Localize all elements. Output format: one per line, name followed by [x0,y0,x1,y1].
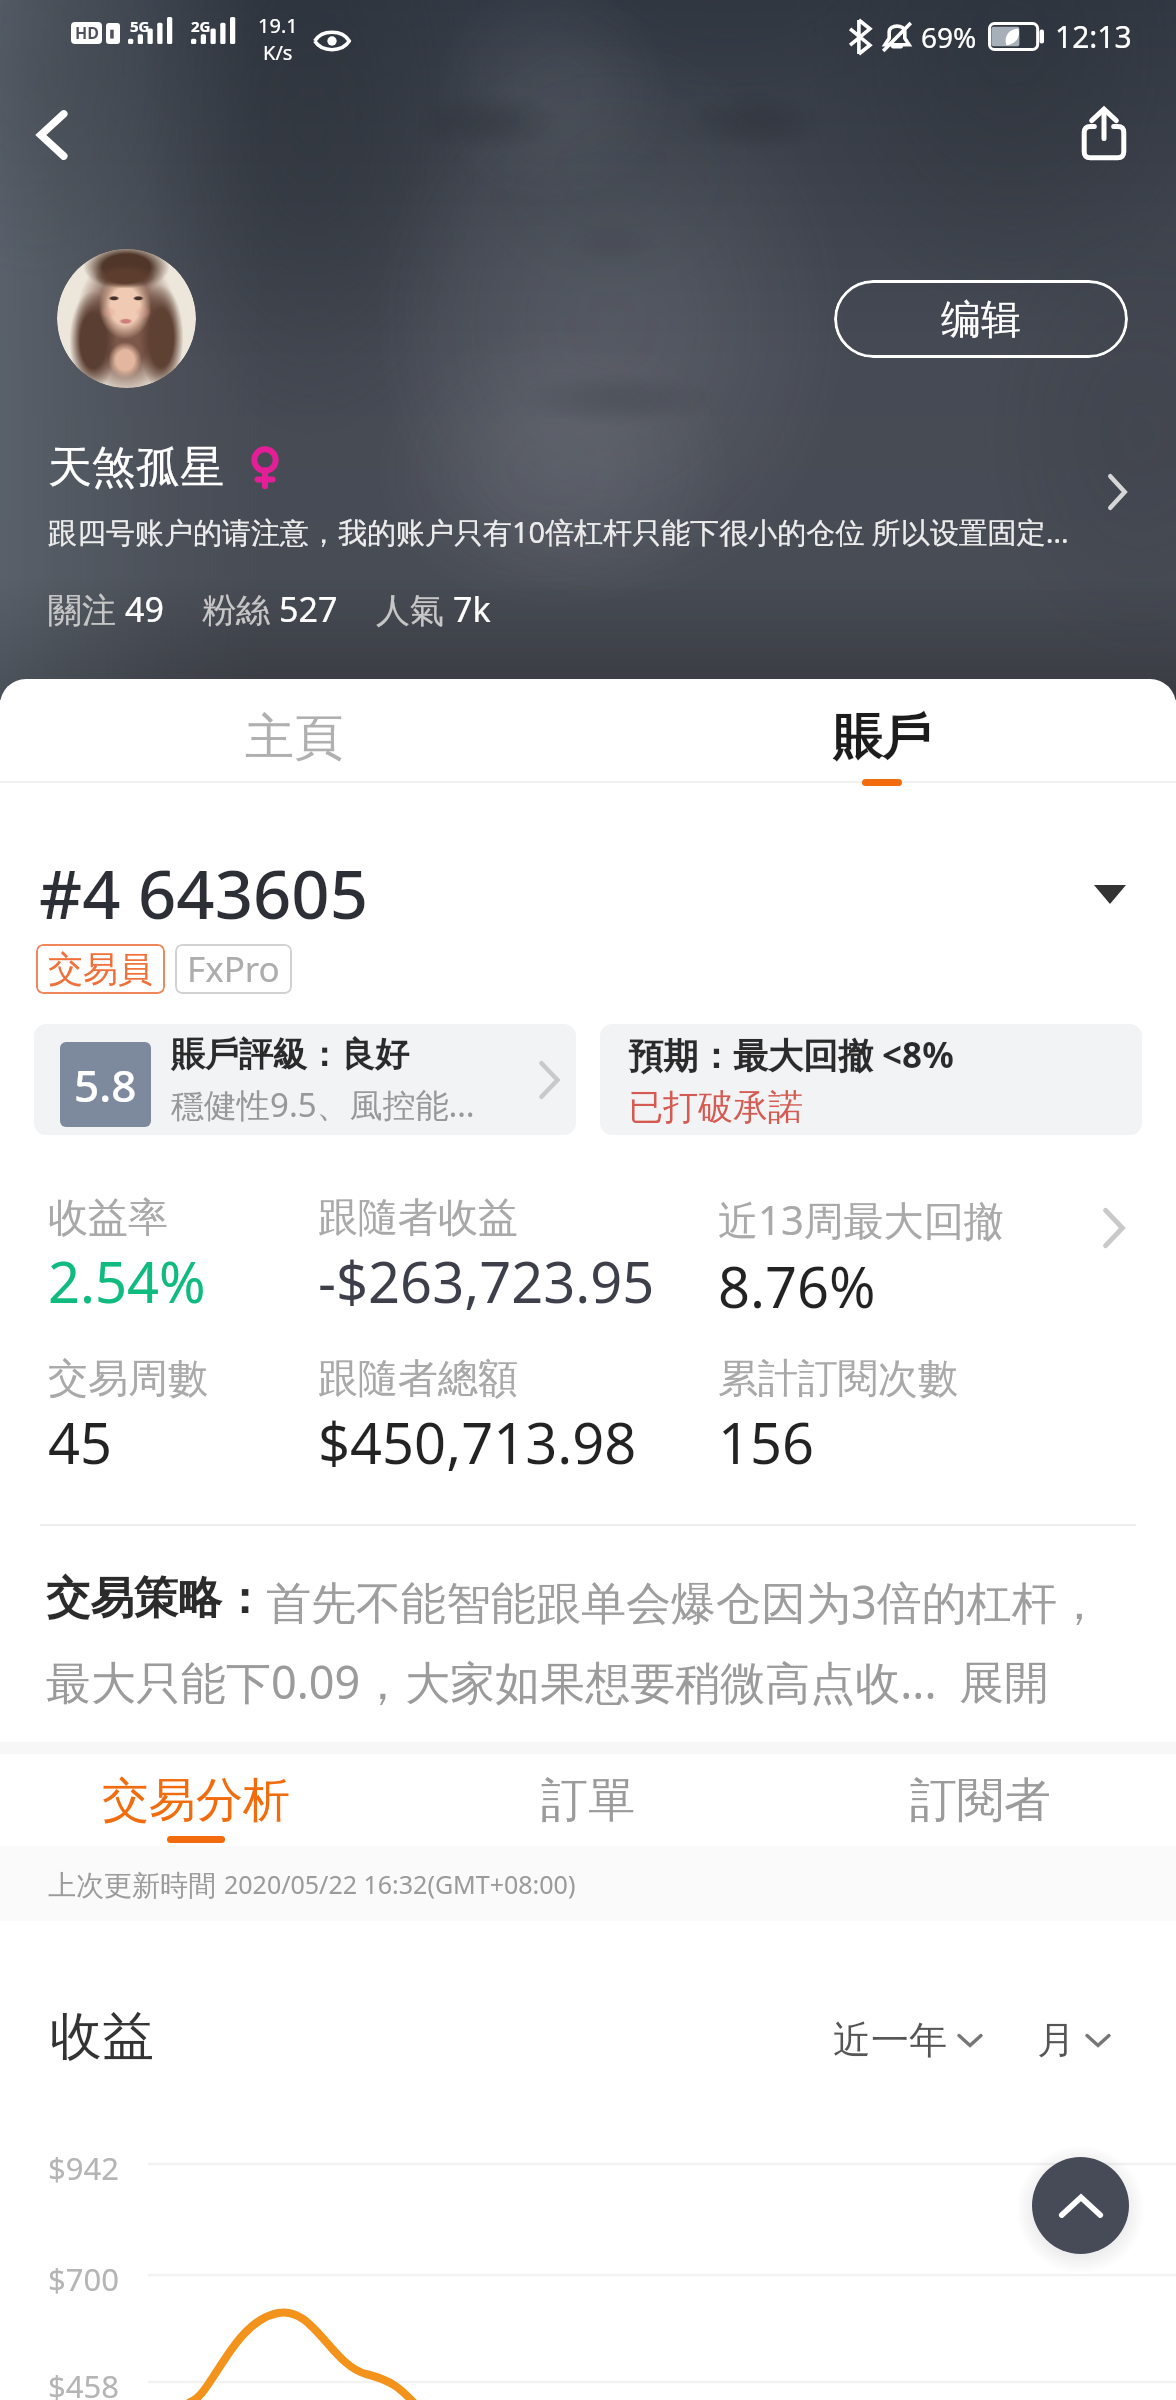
staticText: 天煞孤星 [48,440,224,495]
staticText: 交易員 [48,947,153,991]
staticText: FxPro [187,945,280,993]
button[interactable]: Profile details [1085,460,1149,524]
staticText: 5G [130,16,150,36]
staticText: 收益 [50,2004,154,2070]
staticText: 45 [48,1404,113,1480]
staticText: 交易策略： [46,1571,266,1626]
staticText: 2G [191,16,211,36]
staticText: 最大只能下0.09，大家如果想要稍微高点收... [46,1651,937,1712]
button[interactable]: 訂閱者 [784,1754,1176,1846]
staticText: 527 [279,586,338,632]
staticText: 近一年 [833,2016,947,2064]
staticText: 收益率 [48,1192,168,1242]
button[interactable]: Select account [1080,864,1140,924]
staticText: 訂單 [541,1771,635,1830]
staticText: 主頁 [245,707,343,769]
staticText: 19.1 [258,12,298,39]
staticText: K/s [263,39,293,66]
button[interactable]: 月 [1037,2016,1109,2064]
button[interactable]: 交易分析 [0,1754,392,1846]
staticText: 賬戶 [833,707,931,769]
staticText: $942 [48,2147,119,2189]
staticText: 交易分析 [102,1771,290,1830]
staticText: 跟隨者收益 [318,1192,518,1242]
button[interactable]: Share [1067,96,1141,170]
staticText: 编辑 [941,294,1021,344]
button[interactable]: 粉絲 [202,586,338,632]
staticText: 8.76% [718,1248,876,1324]
staticText: 5.8 [74,1055,137,1115]
staticText: 關注 [48,586,125,632]
button[interactable]: 關注 [48,586,164,632]
staticText: 跟四号账户的请注意，我的账户只有10倍杠杆只能下很小的仓位 所以设置固定… [48,512,1073,552]
button[interactable]: 交易員 [36,944,165,994]
button[interactable]: Profile photo [57,249,196,388]
button[interactable]: 近一年 [833,2016,981,2064]
staticText: $450,713.98 [318,1404,637,1480]
staticText: 月 [1037,2016,1075,2064]
button[interactable]: 编辑 [834,280,1128,358]
staticText: 訂閱者 [910,1771,1051,1830]
staticText: 交易周數 [48,1353,208,1403]
staticText: 首先不能智能跟单会爆仓因为3倍的杠杆， [266,1571,1102,1632]
staticText: 12:13 [1055,16,1132,57]
staticText: 2020/05/22 16:32(GMT+08:00) [224,1867,576,1901]
staticText: 賬戶評級：良好 [171,1033,409,1076]
staticText: 49 [125,586,164,632]
staticText: 累計訂閱次數 [718,1353,958,1403]
staticText: 粉絲 [202,586,279,632]
staticText: #4 643605 [39,847,368,938]
staticText: 近13周最大回撤 [718,1192,1004,1247]
button[interactable]: FxPro [175,944,292,994]
staticText: $458 [48,2365,119,2400]
staticText: 預期：最大回撤 <8% [628,1031,954,1079]
button[interactable]: 賬戶 [588,687,1176,788]
staticText: 2.54% [48,1243,206,1319]
staticText: 69% [921,18,977,56]
button[interactable]: Back [15,98,89,172]
staticText: 穩健性9.5、風控能… [171,1082,475,1127]
staticText: $700 [48,2258,119,2300]
button[interactable]: 展開 [959,1655,1049,1712]
staticText: -$263,723.95 [318,1243,655,1319]
staticText: 上次更新時間 [48,1865,224,1903]
button[interactable]: 訂單 [392,1754,784,1846]
button[interactable]: 5.8 [34,1024,576,1135]
button[interactable]: 預期：最大回撤 <8% [600,1024,1142,1135]
staticText: 156 [718,1404,815,1480]
staticText: 7k [453,586,491,632]
staticText: 人氣 [376,586,453,632]
staticText: 已打破承諾 [628,1085,803,1129]
button[interactable]: 主頁 [0,687,588,788]
button[interactable]: More statistics [1086,1200,1142,1256]
button[interactable]: 人氣 [376,586,491,632]
staticText: HD [75,22,99,44]
button[interactable]: Scroll to top [1032,2157,1129,2254]
staticText: 跟隨者總額 [318,1353,518,1403]
